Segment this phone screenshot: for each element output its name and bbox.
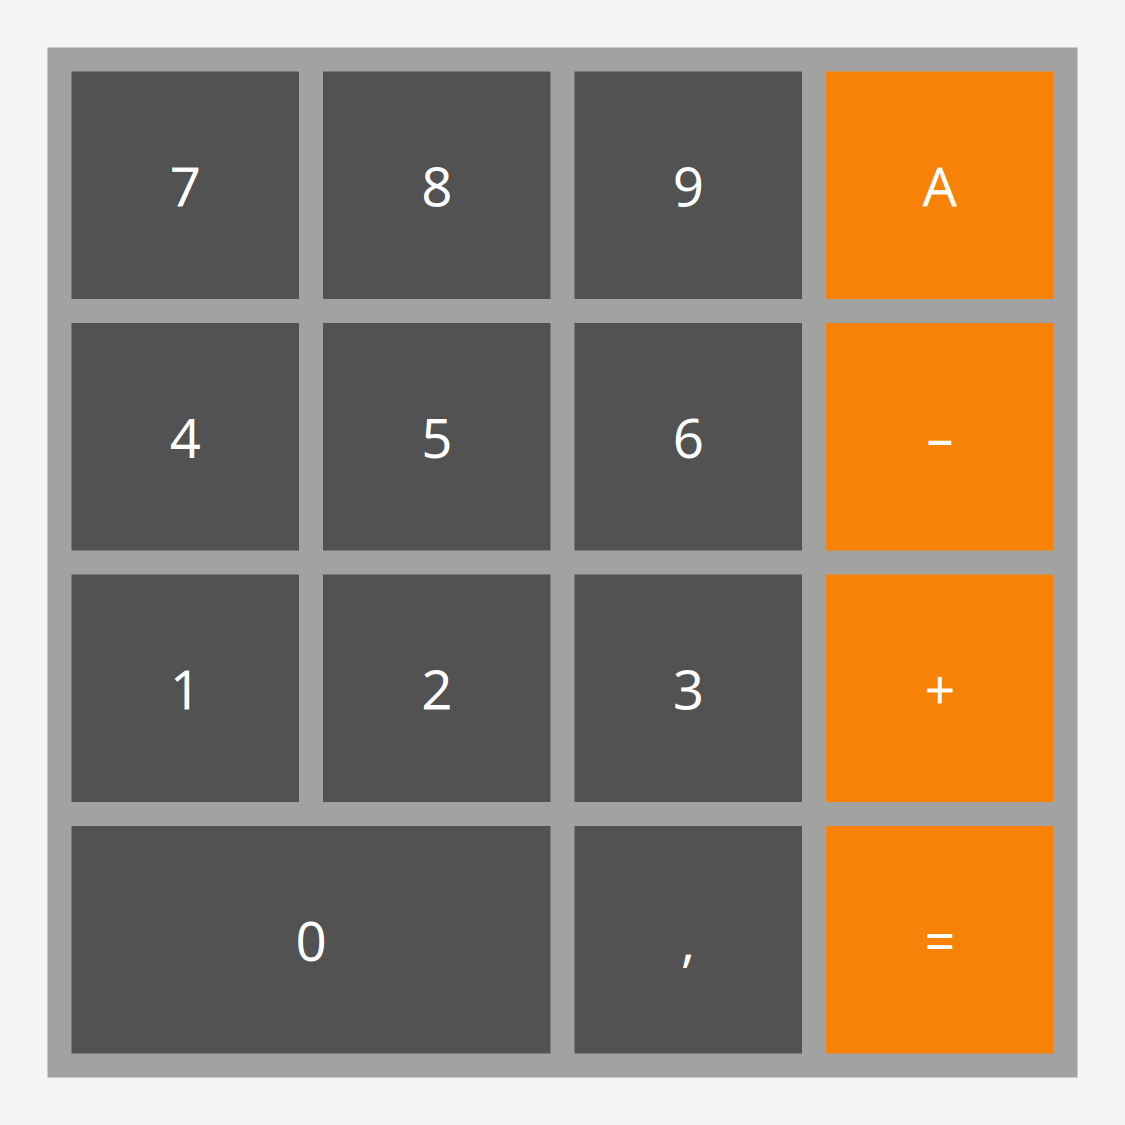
button[interactable]: 2 bbox=[323, 574, 550, 802]
button[interactable]: 1 bbox=[71, 574, 299, 802]
staticText: 2 bbox=[421, 651, 452, 725]
button[interactable]: 9 bbox=[574, 71, 802, 299]
button[interactable]: 3 bbox=[574, 574, 802, 802]
button[interactable]: Equals bbox=[826, 826, 1053, 1053]
button[interactable]: 0 bbox=[71, 826, 550, 1053]
staticText: 7 bbox=[170, 148, 201, 222]
button[interactable]: Minus bbox=[826, 323, 1053, 550]
staticText: 5 bbox=[421, 399, 452, 474]
button[interactable]: 7 bbox=[71, 71, 299, 299]
button[interactable]: Plus bbox=[826, 574, 1053, 802]
button[interactable]: 6 bbox=[574, 323, 802, 550]
button[interactable]: 5 bbox=[323, 323, 550, 550]
button[interactable]: 4 bbox=[71, 323, 299, 550]
staticText: = bbox=[924, 902, 955, 977]
staticText: A bbox=[922, 148, 957, 222]
button[interactable]: 8 bbox=[323, 71, 550, 299]
staticText: 1 bbox=[170, 651, 201, 725]
staticText: 3 bbox=[673, 651, 704, 725]
staticText: 0 bbox=[295, 902, 326, 977]
staticText: , bbox=[681, 902, 696, 977]
staticText: 8 bbox=[421, 148, 452, 222]
button[interactable]: All clear bbox=[826, 71, 1053, 299]
staticText: + bbox=[924, 651, 955, 725]
staticText: – bbox=[926, 399, 953, 474]
button[interactable]: Decimal separator bbox=[574, 826, 802, 1053]
staticText: 6 bbox=[673, 399, 704, 474]
staticText: 4 bbox=[170, 399, 201, 474]
staticText: 9 bbox=[673, 148, 704, 222]
